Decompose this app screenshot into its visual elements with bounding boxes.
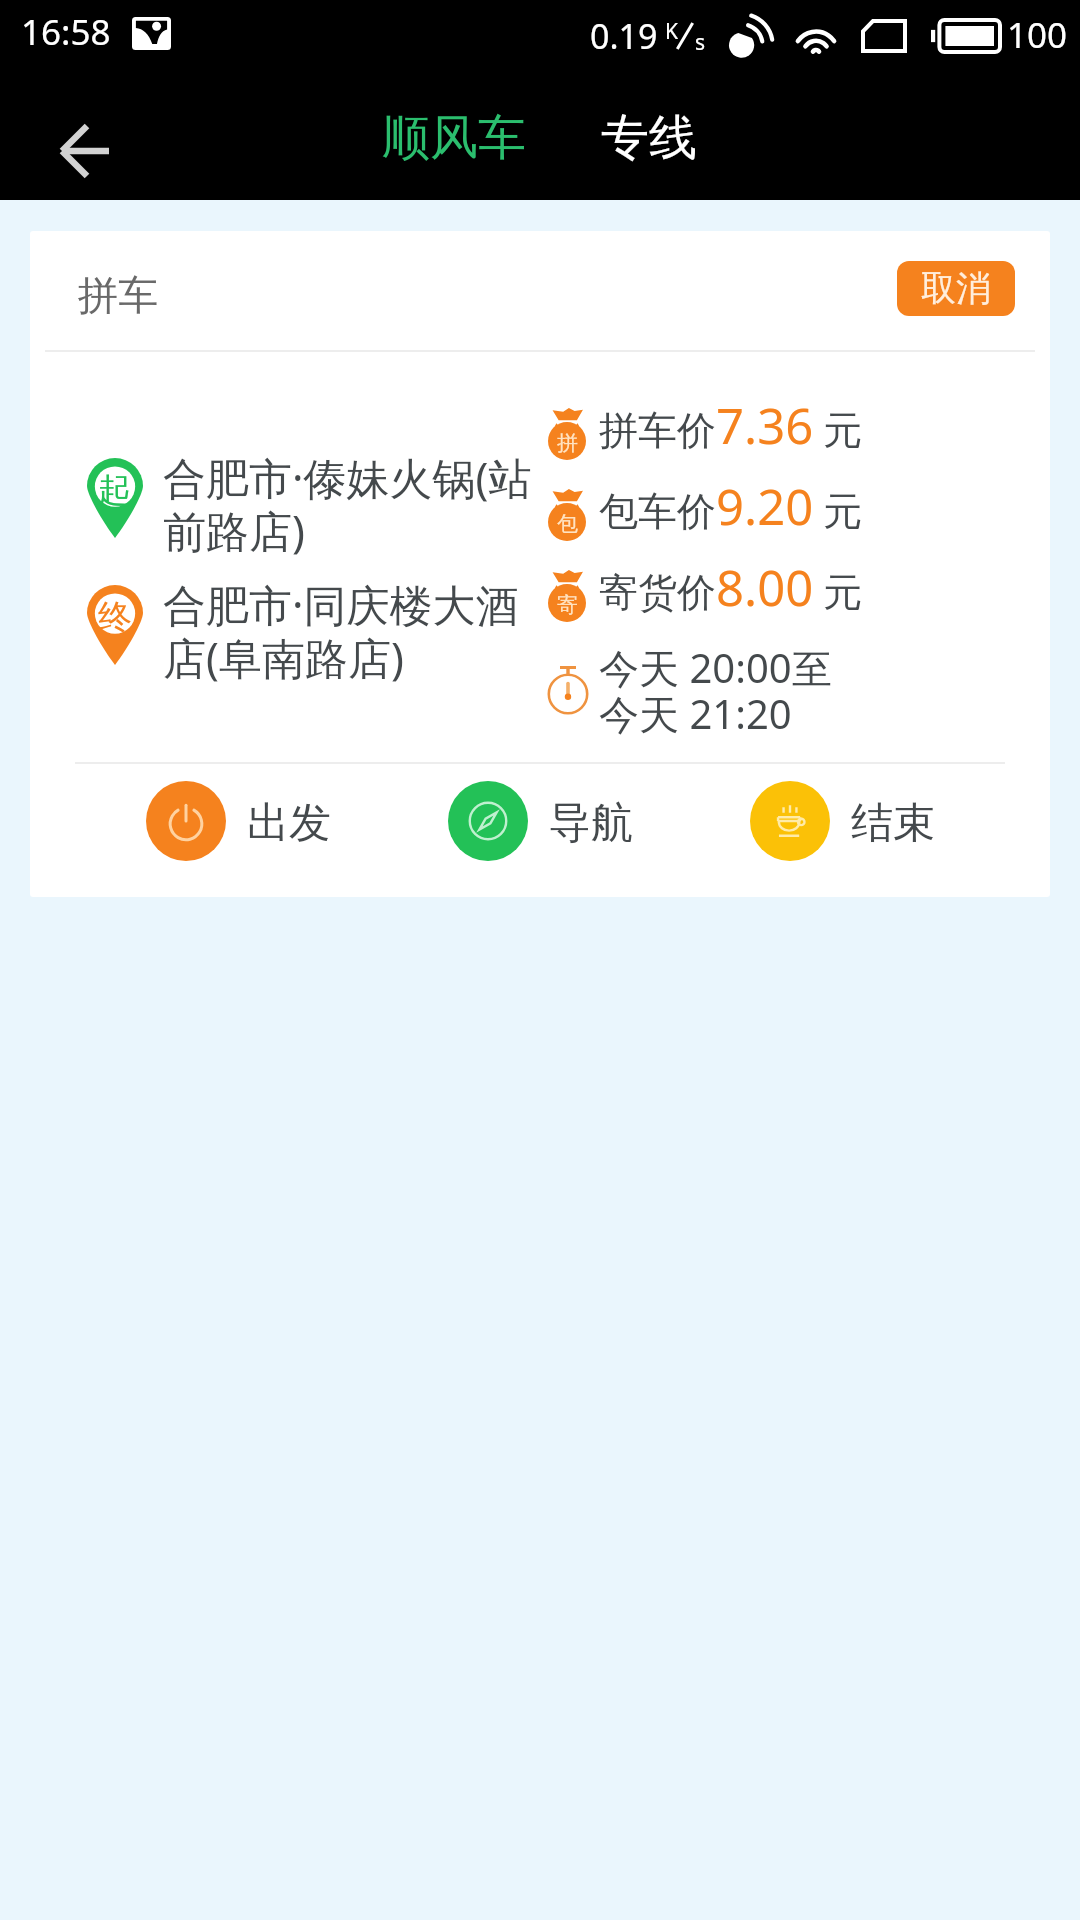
staticText: 专线 bbox=[601, 108, 697, 168]
button[interactable]: 出发 bbox=[146, 781, 331, 861]
staticText: 结束 bbox=[851, 797, 935, 850]
button[interactable]: 导航 bbox=[448, 781, 633, 861]
button[interactable]: 取消 bbox=[897, 261, 1015, 316]
staticText: 拼车价7.36 元 bbox=[599, 392, 863, 459]
staticText: 出发 bbox=[247, 797, 331, 850]
staticText: 取消 bbox=[921, 266, 991, 310]
staticText: 合肥市·傣妹火锅(站前路店) bbox=[163, 448, 538, 560]
button[interactable]: 顺风车 bbox=[372, 98, 536, 178]
staticText: 包 bbox=[557, 511, 578, 537]
staticText: 寄 bbox=[557, 592, 578, 618]
staticText: 今天 20:00至 今天 21:20 bbox=[599, 640, 832, 741]
staticText: 16:58 bbox=[21, 8, 111, 56]
staticText: 导航 bbox=[549, 797, 633, 850]
staticText: 合肥市·同庆楼大酒店(阜南路店) bbox=[163, 575, 538, 687]
staticText: 起 bbox=[98, 469, 132, 512]
staticText: 0.19 bbox=[590, 13, 658, 59]
button[interactable]: Back bbox=[30, 76, 138, 200]
staticText: 寄货价8.00 元 bbox=[599, 554, 863, 621]
staticText: 包车价9.20 元 bbox=[599, 473, 863, 540]
staticText: 终 bbox=[98, 596, 132, 639]
staticText: 拼 bbox=[557, 430, 578, 456]
staticText: 100 bbox=[1007, 11, 1068, 59]
staticText: K bbox=[665, 17, 678, 46]
button[interactable]: 结束 bbox=[750, 781, 935, 861]
button[interactable]: 专线 bbox=[591, 98, 707, 178]
staticText: s bbox=[695, 28, 706, 57]
staticText: 拼车 bbox=[78, 270, 158, 320]
staticText: 顺风车 bbox=[382, 108, 526, 168]
